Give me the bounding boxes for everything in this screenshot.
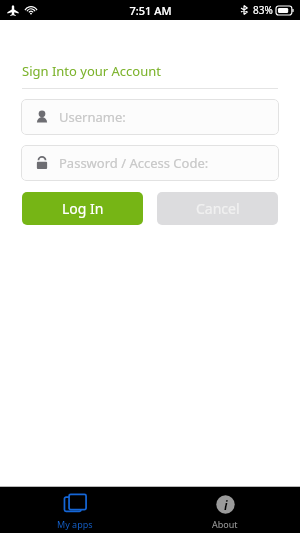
button[interactable]: My apps	[0, 487, 150, 533]
staticText: My apps	[57, 518, 93, 530]
staticText: Cancel	[196, 199, 240, 218]
button[interactable]: Password / Access Code:	[21, 145, 279, 181]
staticText: Log In	[62, 199, 104, 218]
staticText: 7:51 AM	[129, 3, 172, 18]
staticText: Username:	[59, 108, 126, 126]
staticText: i	[224, 497, 228, 513]
button[interactable]: Username:	[21, 99, 279, 135]
button[interactable]: Log In	[22, 192, 143, 225]
staticText: 83%	[253, 3, 273, 17]
staticText: Sign Into your Account	[22, 62, 161, 80]
button[interactable]: i	[150, 487, 300, 533]
staticText: About	[212, 518, 238, 530]
staticText: Password / Access Code:	[59, 154, 209, 172]
button[interactable]: Cancel	[157, 192, 278, 225]
